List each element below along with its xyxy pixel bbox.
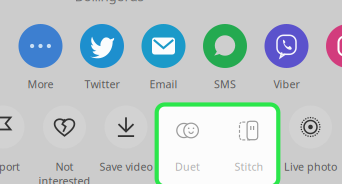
staticText: More <box>27 77 53 91</box>
staticText: Twitter <box>84 77 119 91</box>
button[interactable]: More <box>10 24 71 88</box>
button[interactable]: SMS <box>194 24 256 88</box>
button[interactable]: Not <box>34 105 95 183</box>
staticText: Viber <box>273 77 299 91</box>
button[interactable]: S <box>317 24 342 88</box>
button[interactable]: Save video <box>95 105 157 183</box>
staticText: Duet <box>175 159 200 174</box>
staticText: Save video <box>99 159 152 174</box>
staticText: Bollingerds <box>74 0 143 5</box>
staticText: Live photo <box>284 159 337 174</box>
button[interactable]: Report <box>0 105 34 183</box>
button[interactable]: Viber <box>256 24 317 88</box>
button[interactable]: Duet <box>157 105 218 183</box>
button[interactable]: Twitter <box>71 24 133 88</box>
staticText: Stitch <box>234 159 263 174</box>
staticText: Not <box>55 159 73 174</box>
staticText: Email <box>149 77 177 91</box>
button[interactable]: Live photo <box>280 105 341 183</box>
button[interactable]: Stitch <box>218 105 280 183</box>
staticText: Report <box>0 159 20 174</box>
staticText: interested <box>38 174 90 184</box>
staticText: SMS <box>214 77 236 91</box>
button[interactable]: Email <box>133 24 194 88</box>
